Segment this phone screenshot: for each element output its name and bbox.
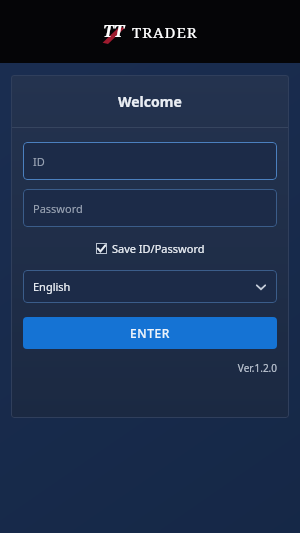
button[interactable]: ENTER [23,317,277,349]
button[interactable]: English [23,270,277,303]
staticText: Ver.1.2.0 [23,361,277,375]
button[interactable]: Password [23,189,277,227]
button[interactable]: Save ID/Password [23,239,277,258]
staticText: TT [103,20,124,42]
staticText: ID [33,154,45,169]
staticText: TRADER [132,22,198,42]
other: Select language [255,281,267,293]
staticText: English [33,279,71,294]
staticText: ENTER [130,325,171,341]
staticText: Save ID/Password [112,241,205,256]
staticText: Welcome [118,92,182,111]
staticText: Password [33,201,83,216]
button[interactable]: ID [23,142,277,180]
